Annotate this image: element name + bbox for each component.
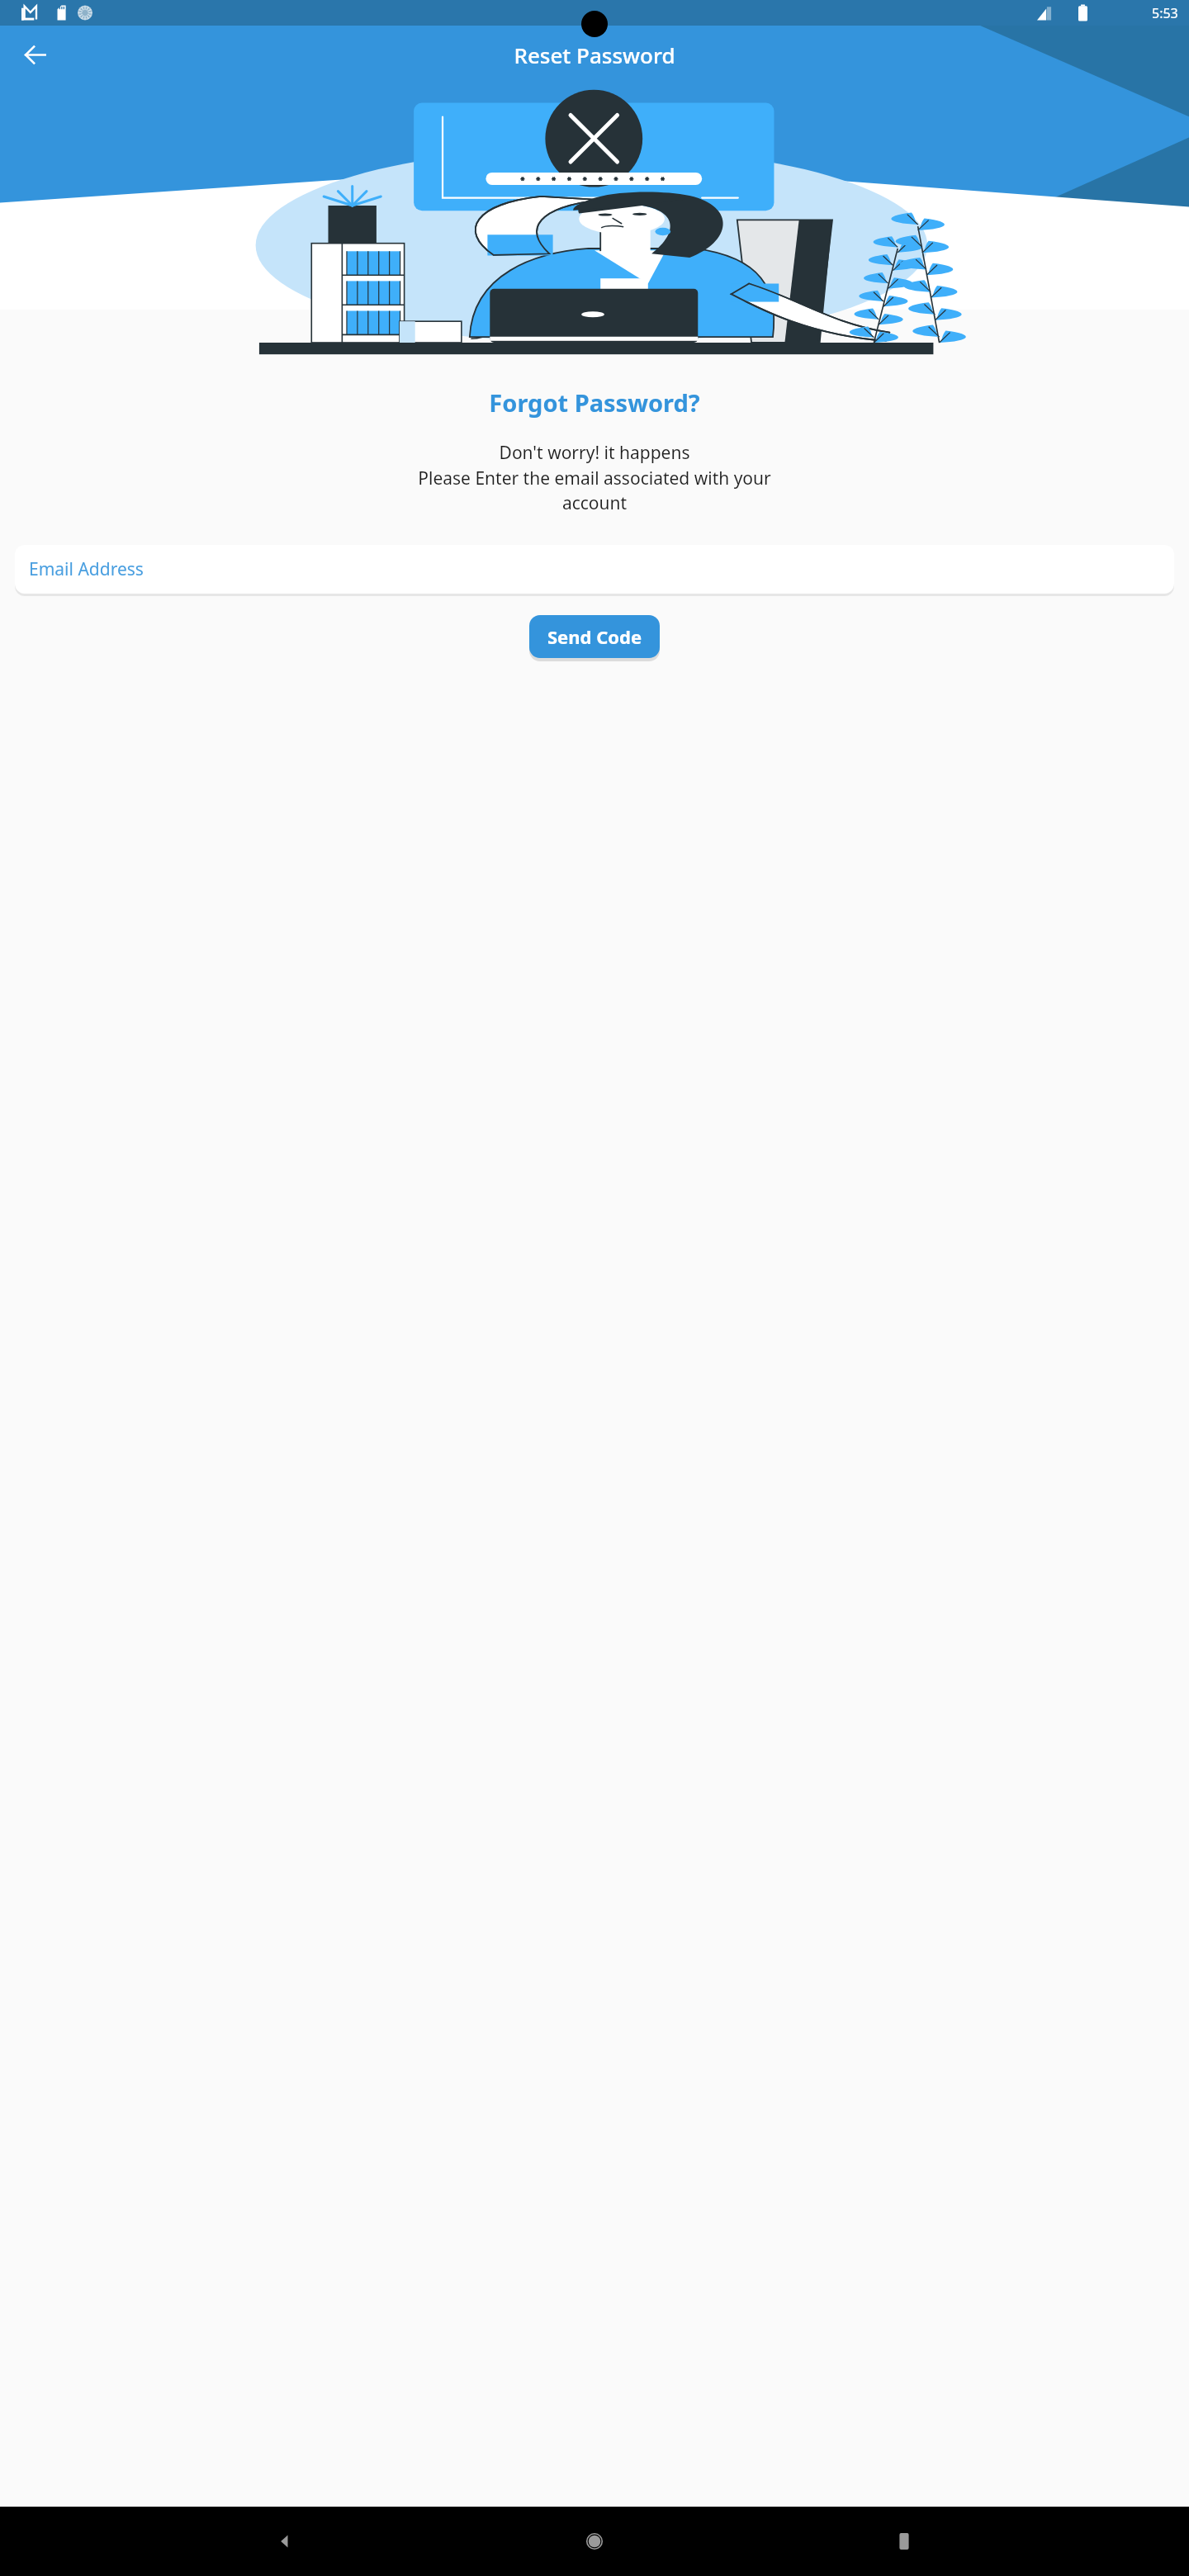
staticText: Send Code [547, 624, 642, 649]
staticText: Don't worry! it happens Please Enter the… [418, 441, 771, 514]
staticText: Email Address [29, 557, 144, 581]
button[interactable]: Email Address [15, 545, 1174, 594]
button[interactable]: Back [260, 2517, 310, 2566]
button[interactable]: Send Code [529, 615, 660, 658]
button[interactable]: Home [570, 2517, 619, 2566]
button[interactable]: Recents [879, 2517, 929, 2566]
staticText: Reset Password [514, 40, 675, 69]
staticText: Forgot Password? [489, 386, 700, 419]
button[interactable]: Back [12, 31, 58, 78]
staticText: 5:53 [1152, 4, 1178, 22]
